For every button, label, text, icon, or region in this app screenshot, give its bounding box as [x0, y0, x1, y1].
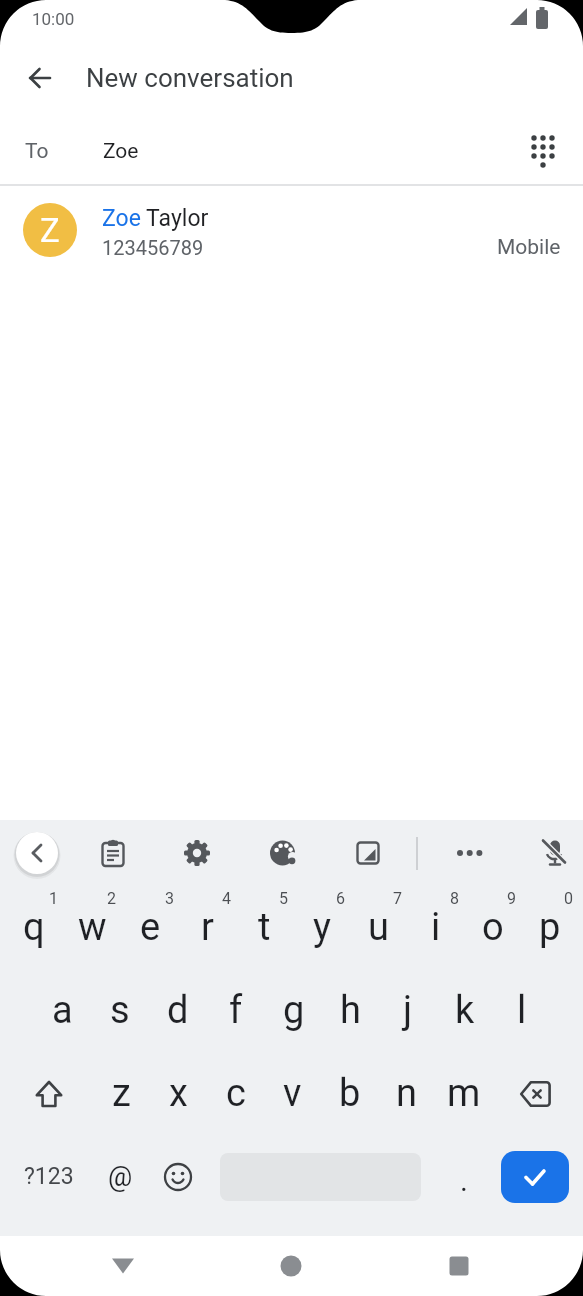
staticText: 0 [564, 889, 573, 908]
button[interactable]: @ [92, 1135, 149, 1218]
staticText: d [167, 988, 189, 1033]
button[interactable] [492, 1052, 578, 1135]
button[interactable] [540, 839, 568, 867]
staticText: 9 [507, 889, 516, 908]
button[interactable]: o [464, 886, 521, 969]
button[interactable]: s [91, 969, 149, 1052]
button[interactable]: y [293, 886, 350, 969]
button[interactable]: h [322, 969, 379, 1052]
staticText: 4 [222, 889, 231, 908]
staticText: k [455, 988, 475, 1033]
button[interactable] [269, 839, 297, 867]
button[interactable]: w [63, 886, 121, 969]
button[interactable]: l [493, 969, 550, 1052]
staticText: ?123 [24, 1163, 74, 1190]
button[interactable]: i [407, 886, 464, 969]
staticText: 8 [450, 889, 459, 908]
staticText: t [258, 905, 271, 950]
button[interactable] [501, 1151, 569, 1203]
staticText: s [110, 988, 130, 1033]
staticText: u [368, 905, 389, 950]
button[interactable]: To [0, 117, 583, 184]
staticText: z [112, 1071, 131, 1116]
button[interactable]: t [236, 886, 293, 969]
staticText: m [447, 1071, 481, 1116]
button[interactable]: q [5, 886, 63, 969]
button[interactable]: Z [0, 193, 583, 269]
button[interactable] [5, 1052, 92, 1135]
staticText: o [482, 905, 504, 950]
button[interactable]: r [179, 886, 236, 969]
button[interactable]: d [149, 969, 207, 1052]
staticText: Zoe [103, 139, 139, 164]
button[interactable]: k [436, 969, 493, 1052]
staticText: c [226, 1071, 246, 1116]
button[interactable] [149, 1135, 206, 1218]
button[interactable]: c [207, 1052, 264, 1135]
staticText: w [78, 905, 107, 950]
staticText: . [460, 1163, 468, 1198]
staticText: 6 [336, 889, 345, 908]
button[interactable] [99, 839, 127, 867]
button[interactable]: m [435, 1052, 492, 1135]
button[interactable]: n [378, 1052, 435, 1135]
staticText: y [313, 905, 331, 950]
staticText: n [396, 1071, 417, 1116]
staticText: New conversation [86, 63, 294, 93]
staticText: 7 [393, 889, 402, 908]
staticText: 10:00 [32, 9, 75, 29]
button[interactable]: ?123 [5, 1135, 92, 1218]
staticText: l [517, 988, 527, 1033]
button[interactable]: b [321, 1052, 378, 1135]
staticText: f [229, 988, 243, 1033]
button[interactable]: x [150, 1052, 207, 1135]
staticText: h [340, 988, 361, 1033]
staticText: p [539, 905, 561, 950]
staticText: j [403, 988, 413, 1033]
button[interactable]: z [92, 1052, 150, 1135]
button[interactable] [441, 1248, 477, 1284]
staticText: x [169, 1071, 188, 1116]
staticText: Z [40, 211, 60, 250]
button[interactable] [105, 1248, 141, 1284]
button[interactable]: f [207, 969, 265, 1052]
staticText: q [23, 905, 45, 950]
staticText: r [201, 905, 214, 950]
button[interactable]: e [121, 886, 179, 969]
button[interactable]: u [350, 886, 407, 969]
button[interactable]: g [265, 969, 322, 1052]
staticText: 5 [279, 889, 288, 908]
button[interactable] [183, 839, 211, 867]
button[interactable] [273, 1248, 309, 1284]
staticText: e [140, 905, 161, 950]
button[interactable] [24, 62, 56, 94]
button[interactable] [455, 839, 483, 867]
button[interactable]: . [435, 1135, 492, 1218]
button[interactable]: a [33, 969, 91, 1052]
button[interactable]: v [264, 1052, 321, 1135]
button[interactable]: p [521, 886, 578, 969]
staticText: Zoe Taylor [102, 205, 209, 232]
button[interactable] [16, 832, 58, 874]
staticText: 123456789 [102, 236, 204, 259]
staticText: b [339, 1071, 361, 1116]
staticText: g [283, 988, 305, 1033]
button[interactable]: j [379, 969, 436, 1052]
staticText: 1 [49, 889, 58, 908]
staticText: a [52, 988, 73, 1033]
staticText: 2 [107, 889, 116, 908]
button[interactable] [529, 137, 557, 165]
button[interactable] [354, 839, 382, 867]
staticText: i [431, 905, 441, 950]
staticText: Mobile [497, 235, 561, 260]
staticText: v [283, 1071, 302, 1116]
staticText: To [25, 139, 49, 164]
staticText: @ [108, 1161, 133, 1193]
staticText: 3 [165, 889, 174, 908]
